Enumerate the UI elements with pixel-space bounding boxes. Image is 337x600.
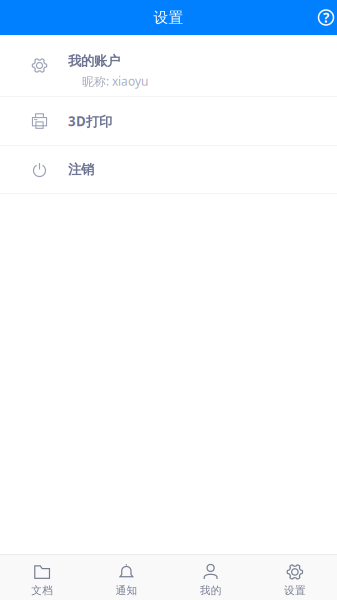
staticText: 设置	[153, 8, 183, 26]
button[interactable]: 注销	[0, 146, 337, 194]
button[interactable]: 3D打印	[0, 97, 337, 146]
staticText: 3D打印	[68, 112, 112, 130]
staticText: 昵称: xiaoyu	[82, 73, 148, 89]
staticText: 我的	[200, 584, 222, 597]
staticText: 通知	[115, 584, 137, 597]
button[interactable]: 通知	[84, 555, 168, 600]
staticText: 我的账户	[68, 53, 120, 69]
button[interactable]: 我的	[168, 555, 253, 600]
staticText: 注销	[68, 161, 94, 178]
staticText: 文档	[31, 584, 53, 597]
button[interactable]: 文档	[0, 555, 84, 600]
button[interactable]: 我的账户	[0, 35, 337, 97]
button[interactable]: Help	[315, 0, 337, 35]
staticText: 设置	[284, 584, 306, 597]
button[interactable]: 设置	[253, 555, 337, 600]
staticText: ?	[323, 9, 329, 26]
